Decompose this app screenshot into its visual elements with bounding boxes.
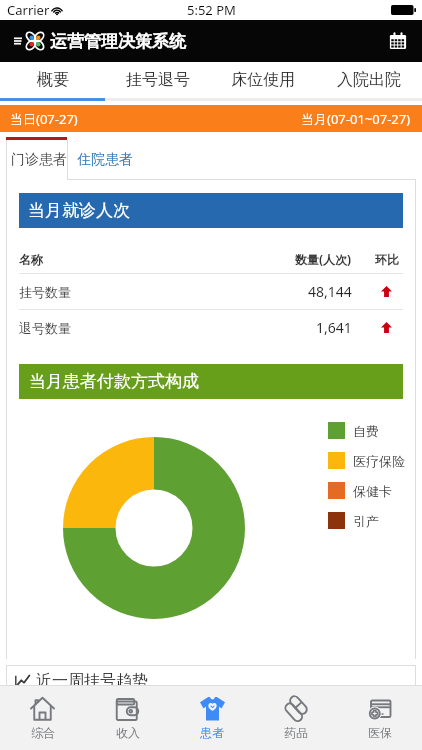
staticText: 当月就诊人次 (28, 200, 130, 221)
staticText: 当日(07-27) (10, 110, 78, 128)
button[interactable]: 挂号数量 (19, 274, 403, 309)
staticText: 5:52 PM (187, 1, 236, 19)
staticText: 医保 (368, 725, 392, 740)
button[interactable]: 当日(07-27) (10, 110, 78, 128)
staticText: 药品 (284, 725, 308, 740)
staticText: 挂号退号 (126, 70, 190, 90)
button[interactable]: Calendar (389, 32, 407, 50)
staticText: 门诊患者 (11, 151, 67, 169)
staticText: Carrier (7, 1, 50, 19)
staticText: 概要 (37, 70, 69, 90)
button[interactable]: 医保 (338, 686, 422, 750)
staticText: 名称 (19, 252, 295, 267)
button[interactable]: 收入 (85, 686, 170, 750)
button[interactable]: 入院出院 (316, 62, 422, 98)
staticText: 运营管理决策系统 (50, 31, 186, 52)
staticText: 48,144 (308, 282, 352, 301)
button[interactable]: 住院患者 (68, 140, 142, 179)
button[interactable]: 药品 (254, 686, 338, 750)
staticText: 1,641 (316, 318, 352, 337)
staticText: 住院患者 (77, 151, 133, 169)
staticText: 环比 (375, 252, 399, 267)
staticText: 保健卡 (353, 483, 392, 499)
staticText: 综合 (31, 725, 55, 740)
staticText: 挂号数量 (19, 284, 308, 300)
staticText: 退号数量 (19, 320, 316, 336)
button[interactable]: 概要 (0, 62, 105, 98)
staticText: 自费 (353, 423, 379, 439)
staticText: 当月(07-01~07-27) (301, 110, 411, 128)
staticText: 近一周挂号趋势 (36, 671, 148, 691)
button[interactable]: 患者 (170, 686, 254, 750)
staticText: 数量(人次) (295, 251, 352, 267)
button[interactable]: Menu (14, 32, 22, 50)
staticText: 收入 (116, 725, 140, 740)
button[interactable]: 挂号退号 (105, 62, 210, 98)
button[interactable]: 床位使用 (210, 62, 316, 98)
staticText: 患者 (200, 725, 224, 740)
staticText: 引产 (353, 513, 379, 529)
staticText: 医疗保险 (353, 453, 405, 469)
button[interactable]: 当月(07-01~07-27) (301, 110, 411, 128)
staticText: 入院出院 (337, 70, 401, 90)
button[interactable]: 综合 (0, 686, 85, 750)
staticText: 床位使用 (231, 70, 295, 90)
staticText: 当月患者付款方式构成 (29, 371, 199, 392)
button[interactable]: 退号数量 (19, 310, 403, 345)
button[interactable]: 门诊患者 (10, 140, 68, 179)
